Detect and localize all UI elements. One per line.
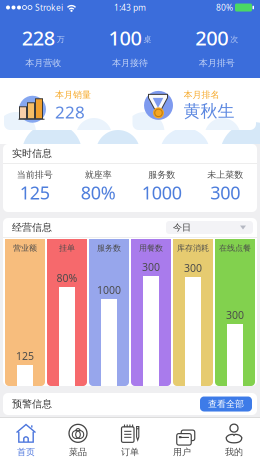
- staticText: 300: [184, 261, 202, 275]
- button[interactable]: 订单: [104, 423, 156, 458]
- staticText: 200: [195, 24, 228, 51]
- staticText: 100: [108, 24, 141, 51]
- staticText: 本月排号: [199, 57, 235, 69]
- staticText: 用户: [173, 446, 191, 458]
- staticText: 次: [230, 34, 238, 44]
- staticText: 在线点餐: [219, 243, 251, 253]
- staticText: 125: [20, 180, 50, 205]
- staticText: 首页: [17, 446, 35, 458]
- staticText: 本月接待: [112, 57, 148, 69]
- button[interactable]: 今日: [166, 221, 253, 234]
- staticText: 当前排号: [17, 169, 53, 180]
- staticText: 服务数: [148, 169, 175, 180]
- staticText: 挂单: [59, 243, 75, 253]
- button[interactable]: 查看全部: [200, 396, 252, 411]
- button[interactable]: 菜品: [52, 423, 104, 458]
- staticText: 实时信息: [12, 147, 52, 160]
- staticText: 万: [57, 34, 65, 44]
- staticText: 80%: [56, 271, 77, 285]
- staticText: Strokei: [35, 2, 63, 13]
- button[interactable]: 本月排名: [132, 80, 256, 130]
- staticText: 1000: [97, 283, 121, 297]
- staticText: 菜品: [69, 446, 87, 458]
- staticText: 1:43 pm: [114, 2, 146, 13]
- staticText: 库存消耗: [177, 243, 209, 253]
- staticText: 300: [210, 180, 240, 205]
- staticText: 营业额: [13, 243, 37, 253]
- staticText: 300: [142, 260, 160, 274]
- button[interactable]: 我的: [208, 423, 260, 458]
- staticText: 未上菜数: [207, 169, 243, 180]
- staticText: 300: [226, 308, 244, 322]
- staticText: 本月销量: [55, 89, 91, 100]
- staticText: 228: [22, 24, 55, 51]
- staticText: 80%: [216, 2, 233, 13]
- staticText: 查看全部: [208, 398, 244, 410]
- staticText: 就座率: [85, 169, 112, 180]
- staticText: 我的: [225, 446, 243, 458]
- staticText: 228: [55, 100, 85, 123]
- staticText: 本月排名: [183, 89, 219, 100]
- staticText: 黄秋生: [183, 100, 234, 122]
- staticText: 预警信息: [12, 398, 52, 410]
- staticText: 本月营收: [25, 57, 61, 69]
- staticText: 用餐数: [139, 243, 163, 253]
- button[interactable]: 用户: [156, 423, 208, 458]
- button[interactable]: 本月销量: [4, 80, 127, 130]
- staticText: 经营信息: [12, 221, 52, 234]
- button[interactable]: 首页: [0, 423, 52, 458]
- staticText: 125: [16, 349, 34, 363]
- staticText: 1000: [142, 180, 182, 205]
- staticText: 订单: [121, 446, 139, 458]
- staticText: 桌: [143, 34, 151, 44]
- staticText: 今日: [173, 222, 191, 233]
- staticText: 服务数: [97, 243, 121, 253]
- staticText: 80%: [81, 180, 116, 205]
